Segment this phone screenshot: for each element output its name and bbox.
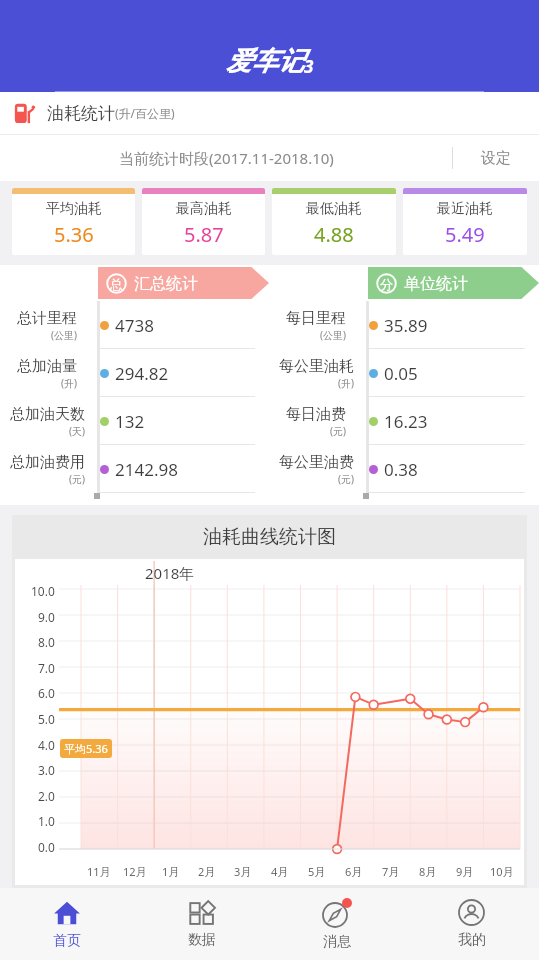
staticText: 汇总统计 xyxy=(134,274,198,294)
staticText: 12月 xyxy=(123,864,147,879)
button[interactable]: 最低油耗 xyxy=(272,188,396,255)
button[interactable]: 当前统计时段(2017.11-2018.10) xyxy=(0,135,452,181)
staticText: 平均5.36 xyxy=(64,741,108,756)
staticText: 294.82 xyxy=(115,362,169,385)
staticText: 油耗曲线统计图 xyxy=(203,525,336,549)
staticText: (元) xyxy=(69,472,85,486)
staticText: (升) xyxy=(61,376,77,390)
other: 消息 xyxy=(322,898,352,928)
staticText: 每公里油耗 xyxy=(279,357,354,376)
staticText: 0.0 xyxy=(38,839,55,855)
staticText: 最近油耗 xyxy=(437,200,493,218)
button[interactable]: 首页 xyxy=(0,888,134,960)
staticText: (公里) xyxy=(51,328,77,342)
staticText: 1月 xyxy=(162,864,180,879)
staticText: 10.0 xyxy=(31,583,55,599)
staticText: 7.0 xyxy=(38,660,55,676)
staticText: 4.88 xyxy=(314,221,354,248)
staticText: 总 xyxy=(110,276,123,292)
staticText: 5.49 xyxy=(445,221,485,248)
staticText: (升) xyxy=(338,376,354,390)
button[interactable]: 最高油耗 xyxy=(142,188,265,255)
staticText: 11月 xyxy=(87,864,111,879)
staticText: 6.0 xyxy=(38,685,55,701)
staticText: 6月 xyxy=(345,864,363,879)
staticText: 7月 xyxy=(382,864,400,879)
staticText: 8月 xyxy=(419,864,437,879)
button[interactable]: 消息 xyxy=(269,888,404,960)
button[interactable]: 设定 xyxy=(453,135,539,181)
staticText: 2018年 xyxy=(145,563,195,583)
other: 首页 xyxy=(53,899,81,927)
staticText: 4.0 xyxy=(38,737,55,753)
staticText: 0.38 xyxy=(384,458,418,481)
staticText: (公里) xyxy=(320,328,346,342)
staticText: (天) xyxy=(69,424,85,438)
staticText: 1.0 xyxy=(38,813,55,829)
staticText: 132 xyxy=(115,410,145,433)
staticText: (元) xyxy=(330,424,346,438)
staticText: 最高油耗 xyxy=(176,200,232,218)
staticText: 9月 xyxy=(456,864,474,879)
staticText: 爱车记 xyxy=(226,45,304,78)
staticText: 总加油量 xyxy=(17,357,77,376)
staticText: 0.05 xyxy=(384,362,418,385)
staticText: 我的 xyxy=(458,931,486,949)
staticText: 平均油耗 xyxy=(46,200,102,218)
staticText: 单位统计 xyxy=(404,274,468,294)
staticText: 数据 xyxy=(188,931,216,949)
staticText: 总加油天数 xyxy=(10,405,85,424)
staticText: 4月 xyxy=(271,864,289,879)
staticText: 3月 xyxy=(234,864,252,879)
staticText: 每公里油费 xyxy=(279,453,354,472)
other: 我的 xyxy=(458,899,485,926)
staticText: 5月 xyxy=(308,864,326,879)
staticText: 3.0 xyxy=(38,762,55,778)
staticText: 5.36 xyxy=(54,221,94,248)
staticText: 当前统计时段(2017.11-2018.10) xyxy=(119,148,334,168)
staticText: 总计里程 xyxy=(17,309,77,328)
staticText: 每日油费 xyxy=(286,405,346,424)
staticText: 最低油耗 xyxy=(306,200,362,218)
staticText: 每日里程 xyxy=(286,309,346,328)
staticText: 10月 xyxy=(490,864,514,879)
button[interactable]: 数据 xyxy=(134,888,269,960)
staticText: 5.87 xyxy=(184,221,224,248)
staticText: 消息 xyxy=(323,933,351,951)
staticText: 分 xyxy=(380,276,393,292)
staticText: 2.0 xyxy=(38,788,55,804)
staticText: 2月 xyxy=(198,864,216,879)
staticText: 总加油费用 xyxy=(10,453,85,472)
staticText: 4738 xyxy=(115,314,154,337)
staticText: 2142.98 xyxy=(115,458,178,481)
staticText: 设定 xyxy=(481,149,511,168)
staticText: 油耗统计 xyxy=(47,103,115,124)
other: 数据 xyxy=(189,900,215,926)
staticText: 首页 xyxy=(53,932,81,950)
staticText: 9.0 xyxy=(38,609,55,625)
staticText: 8.0 xyxy=(38,634,55,650)
button[interactable]: 我的 xyxy=(404,888,539,960)
staticText: (元) xyxy=(338,472,354,486)
button[interactable]: 最近油耗 xyxy=(403,188,527,255)
button[interactable]: 平均油耗 xyxy=(12,188,135,255)
staticText: (升/百公里) xyxy=(115,105,175,121)
staticText: 3 xyxy=(304,55,314,78)
staticText: 35.89 xyxy=(384,314,428,337)
staticText: 5.0 xyxy=(38,711,55,727)
staticText: 16.23 xyxy=(384,410,428,433)
